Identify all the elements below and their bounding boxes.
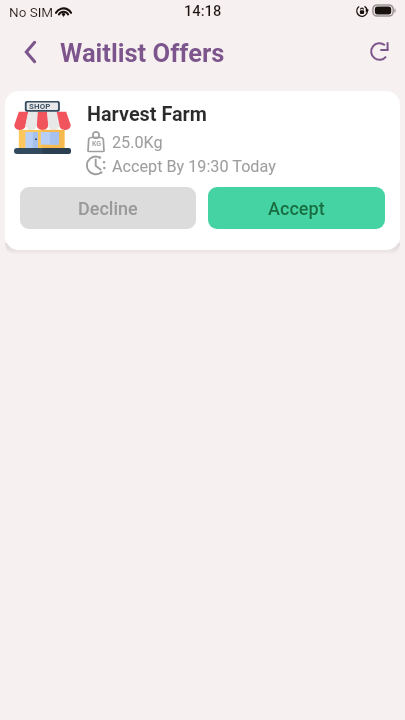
staticText: 25.0Kg [112, 133, 163, 152]
button[interactable]: Back [12, 34, 48, 70]
button[interactable]: Decline [20, 187, 196, 229]
button[interactable]: Accept [208, 187, 385, 229]
staticText: Harvest Farm [87, 103, 207, 126]
staticText: Accept [268, 198, 325, 219]
staticText: SHOP [29, 102, 51, 111]
staticText: No SIM [9, 4, 54, 20]
staticText: Accept By 19:30 Today [112, 157, 276, 176]
staticText: 14:18 [184, 2, 222, 19]
button[interactable]: SHOP [5, 91, 400, 250]
button[interactable]: Refresh [362, 34, 396, 68]
staticText: KG [92, 140, 102, 148]
staticText: Decline [78, 198, 138, 219]
staticText: Waitlist Offers [60, 38, 225, 68]
